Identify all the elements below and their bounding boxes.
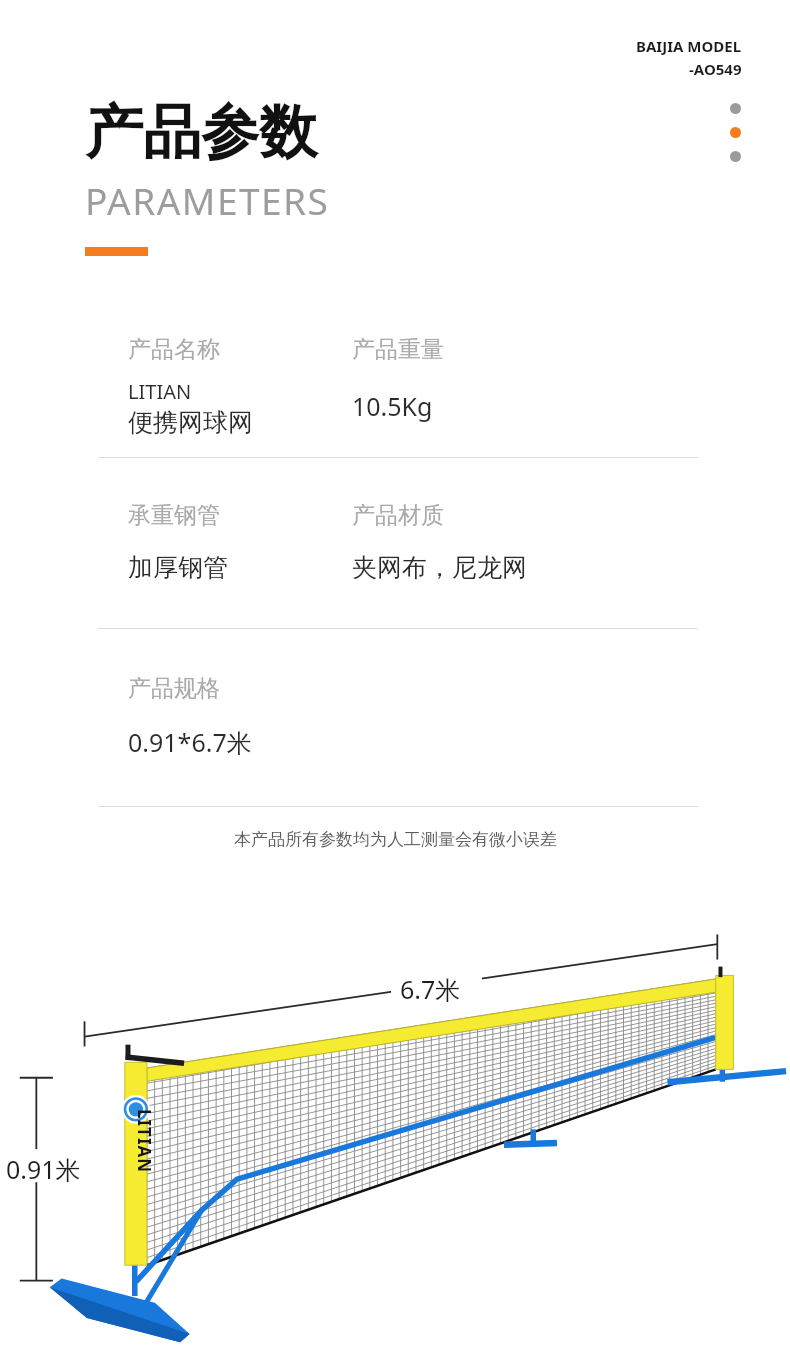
staticText: 0.91*6.7米 [128,725,252,759]
staticText: -AO549 [689,59,742,79]
staticText: 加厚钢管 [128,552,228,583]
staticText: 6.7米 [400,972,461,1006]
button[interactable]: 承重钢管 [0,501,790,583]
other: Portable tennis net product diagram [0,930,790,1371]
staticText: 产品材质 [352,501,444,530]
button[interactable]: 产品名称 [0,335,790,438]
staticText: PARAMETERS [85,175,330,225]
button[interactable]: 产品规格 [0,674,790,759]
staticText: 0.91米 [6,1152,81,1186]
staticText: 夹网布，尼龙网 [352,552,527,583]
staticText: 产品名称 [128,335,220,364]
staticText: BAIJIA MODEL [636,36,742,56]
staticText: 本产品所有参数均为人工测量会有微小误差 [234,829,557,850]
staticText: 产品规格 [128,674,220,703]
staticText: 产品重量 [352,335,444,364]
staticText: 承重钢管 [128,501,220,530]
button[interactable]: BAIJIA MODEL [636,36,742,79]
staticText: LITIAN [133,1109,156,1174]
staticText: 产品参数 [85,96,317,169]
staticText: 10.5Kg [352,389,433,423]
staticText: 便携网球网 [128,407,253,438]
staticText: LITIAN [128,378,192,405]
